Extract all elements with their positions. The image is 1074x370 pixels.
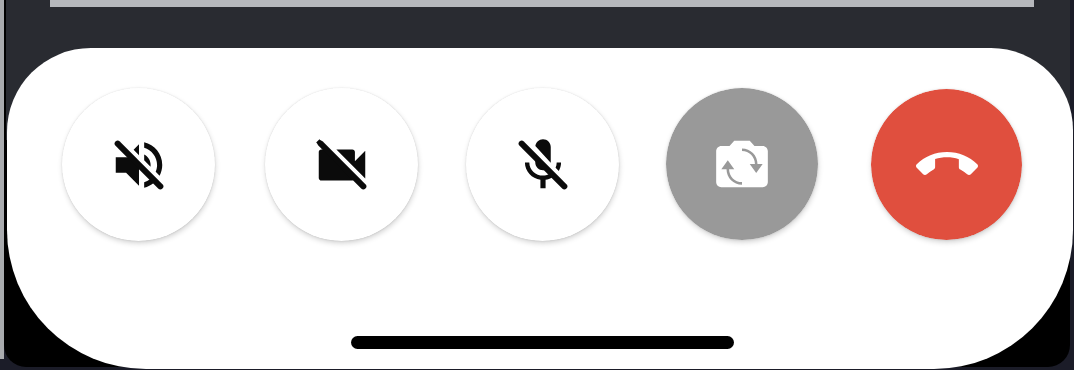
button[interactable]: End call bbox=[871, 89, 1022, 240]
button[interactable]: Home gesture handle bbox=[351, 336, 734, 349]
button[interactable]: Turn off speaker bbox=[62, 88, 215, 241]
button[interactable]: Mute microphone bbox=[466, 88, 619, 241]
button[interactable]: Flip camera bbox=[666, 88, 818, 240]
button[interactable]: Turn off camera bbox=[265, 88, 418, 241]
